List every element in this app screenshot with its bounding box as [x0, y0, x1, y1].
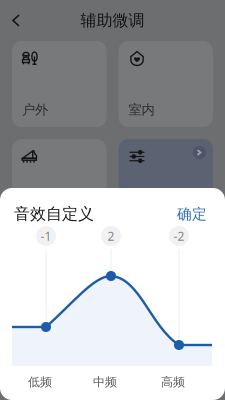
button[interactable]: 室内 — [118, 41, 213, 127]
button[interactable] — [12, 139, 106, 225]
staticText: -1 — [40, 228, 51, 244]
staticText: 低频 — [28, 375, 52, 389]
staticText: 室内 — [128, 102, 154, 118]
staticText: 2 — [107, 228, 114, 244]
button[interactable]: Back — [3, 6, 29, 34]
staticText: 中频 — [93, 375, 117, 389]
button[interactable]: 户外 — [12, 41, 106, 127]
staticText: 确定 — [177, 205, 207, 223]
button[interactable]: 确定 — [173, 202, 211, 226]
staticText: -2 — [173, 228, 184, 244]
staticText: 音效自定义 — [14, 204, 94, 224]
staticText: 辅助微调 — [80, 11, 144, 30]
staticText: 高频 — [161, 375, 185, 389]
button[interactable] — [118, 139, 213, 225]
staticText: 户外 — [22, 102, 48, 118]
